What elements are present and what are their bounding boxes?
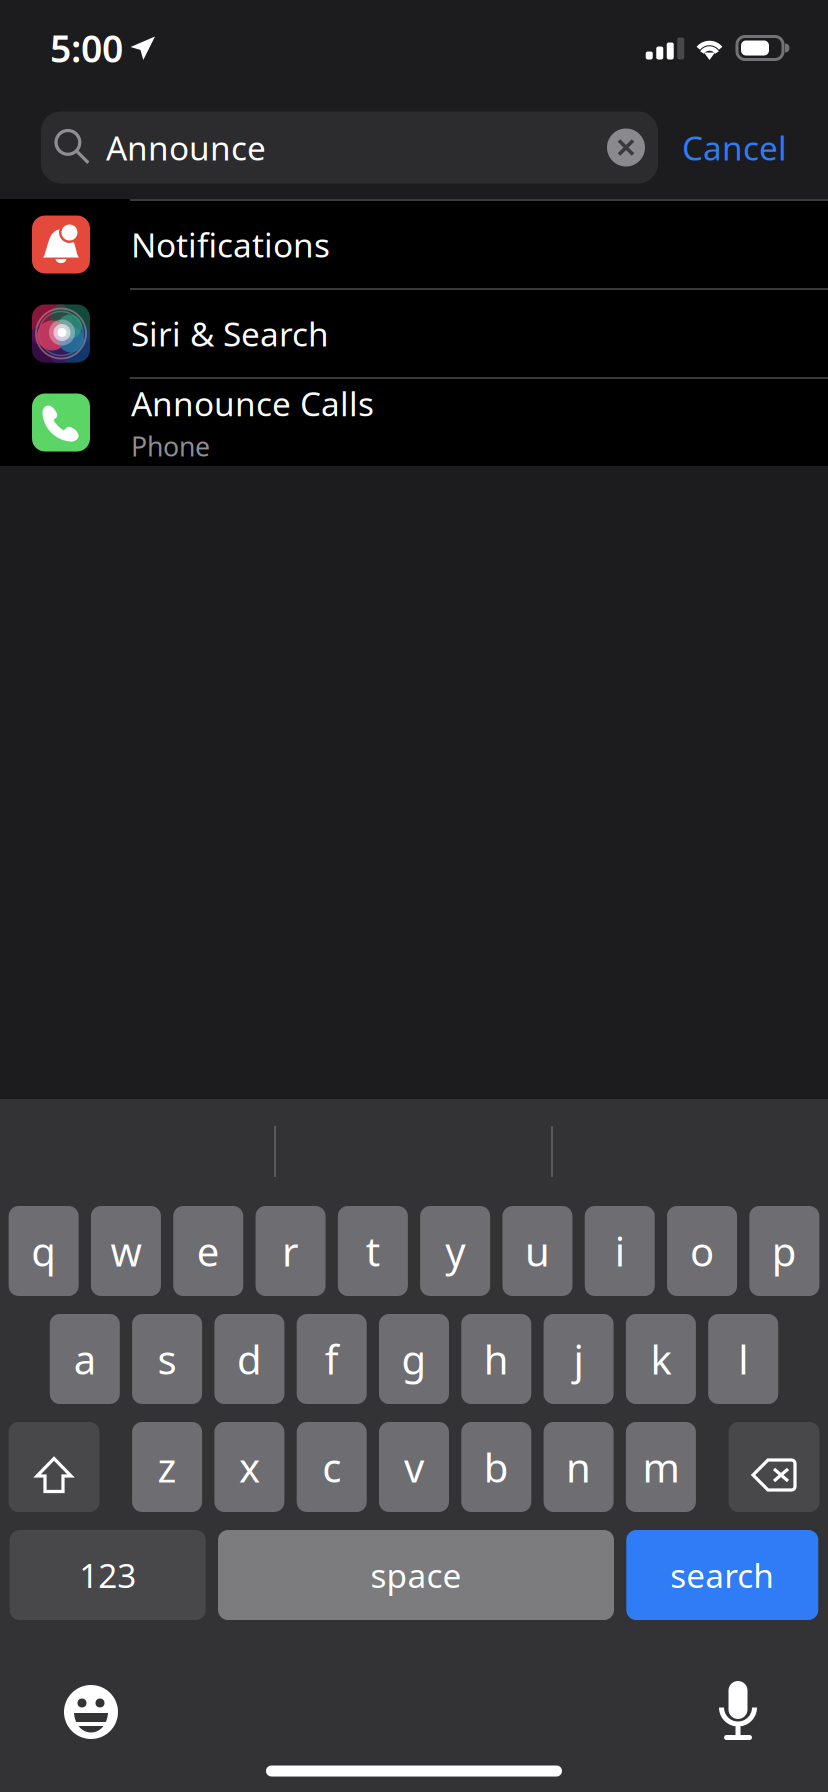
button[interactable]: e <box>173 1206 243 1296</box>
button[interactable]: k <box>626 1314 696 1404</box>
button[interactable]: z <box>132 1422 202 1512</box>
staticText: x <box>239 1440 260 1493</box>
button[interactable]: s <box>132 1314 202 1404</box>
button[interactable]: u <box>502 1206 572 1296</box>
button[interactable]: g <box>379 1314 449 1404</box>
button[interactable]: search <box>626 1530 818 1620</box>
staticText: space <box>370 1553 461 1597</box>
button[interactable]: n <box>544 1422 614 1512</box>
staticText: i <box>615 1224 625 1277</box>
button[interactable]: Notifications <box>0 201 828 288</box>
button[interactable]: b <box>461 1422 531 1512</box>
button[interactable]: i <box>585 1206 655 1296</box>
button[interactable]: a <box>50 1314 120 1404</box>
button[interactable]: Siri & Search <box>0 290 828 377</box>
staticText: l <box>738 1332 748 1385</box>
staticText: y <box>445 1224 465 1277</box>
staticText: u <box>525 1224 550 1277</box>
staticText: k <box>650 1332 671 1385</box>
button[interactable]: y <box>420 1206 490 1296</box>
button[interactable]: Shift <box>8 1422 99 1512</box>
button[interactable]: x <box>214 1422 284 1512</box>
button[interactable]: r <box>255 1206 325 1296</box>
button[interactable]: l <box>708 1314 778 1404</box>
button[interactable]: Clear text <box>607 111 658 183</box>
staticText: Notifications <box>131 222 330 267</box>
button[interactable]: Announce Calls <box>0 379 828 466</box>
staticText: v <box>404 1440 424 1493</box>
button[interactable]: Delete <box>728 1422 819 1512</box>
button[interactable]: Emoji keyboard <box>56 1677 126 1747</box>
staticText: c <box>322 1440 341 1493</box>
button[interactable]: m <box>626 1422 696 1512</box>
staticText: g <box>401 1332 426 1385</box>
button[interactable]: Dictation <box>708 1668 768 1732</box>
staticText: n <box>566 1440 591 1493</box>
button[interactable]: 123 <box>10 1530 206 1620</box>
staticText: s <box>158 1332 177 1385</box>
button[interactable]: f <box>297 1314 367 1404</box>
button[interactable]: c <box>297 1422 367 1512</box>
staticText: e <box>197 1224 220 1277</box>
staticText: Announce <box>106 125 266 170</box>
staticText: o <box>690 1224 714 1277</box>
button[interactable]: w <box>91 1206 161 1296</box>
staticText: search <box>670 1553 774 1597</box>
staticText: Phone <box>131 428 210 464</box>
staticText: d <box>237 1332 262 1385</box>
staticText: m <box>642 1440 679 1493</box>
staticText: q <box>31 1224 56 1277</box>
staticText: f <box>325 1332 339 1385</box>
staticText: h <box>484 1332 509 1385</box>
button[interactable]: space <box>218 1530 614 1620</box>
staticText: 5:00 <box>50 23 123 73</box>
button[interactable]: t <box>338 1206 408 1296</box>
staticText: z <box>158 1440 177 1493</box>
staticText: j <box>574 1332 584 1385</box>
staticText: b <box>484 1440 509 1493</box>
staticText: p <box>772 1224 797 1277</box>
staticText: Announce Calls <box>131 381 374 425</box>
button[interactable]: p <box>749 1206 819 1296</box>
button[interactable]: v <box>379 1422 449 1512</box>
staticText: r <box>282 1224 299 1277</box>
staticText: Siri & Search <box>131 311 329 356</box>
button[interactable]: o <box>667 1206 737 1296</box>
staticText: w <box>110 1224 141 1277</box>
staticText: t <box>366 1224 380 1277</box>
staticText: a <box>74 1332 96 1385</box>
staticText: Cancel <box>682 125 787 170</box>
button[interactable]: q <box>9 1206 79 1296</box>
button[interactable]: d <box>214 1314 284 1404</box>
button[interactable]: j <box>544 1314 614 1404</box>
button[interactable]: Cancel <box>658 111 811 183</box>
staticText: 123 <box>79 1553 136 1597</box>
button[interactable]: h <box>461 1314 531 1404</box>
